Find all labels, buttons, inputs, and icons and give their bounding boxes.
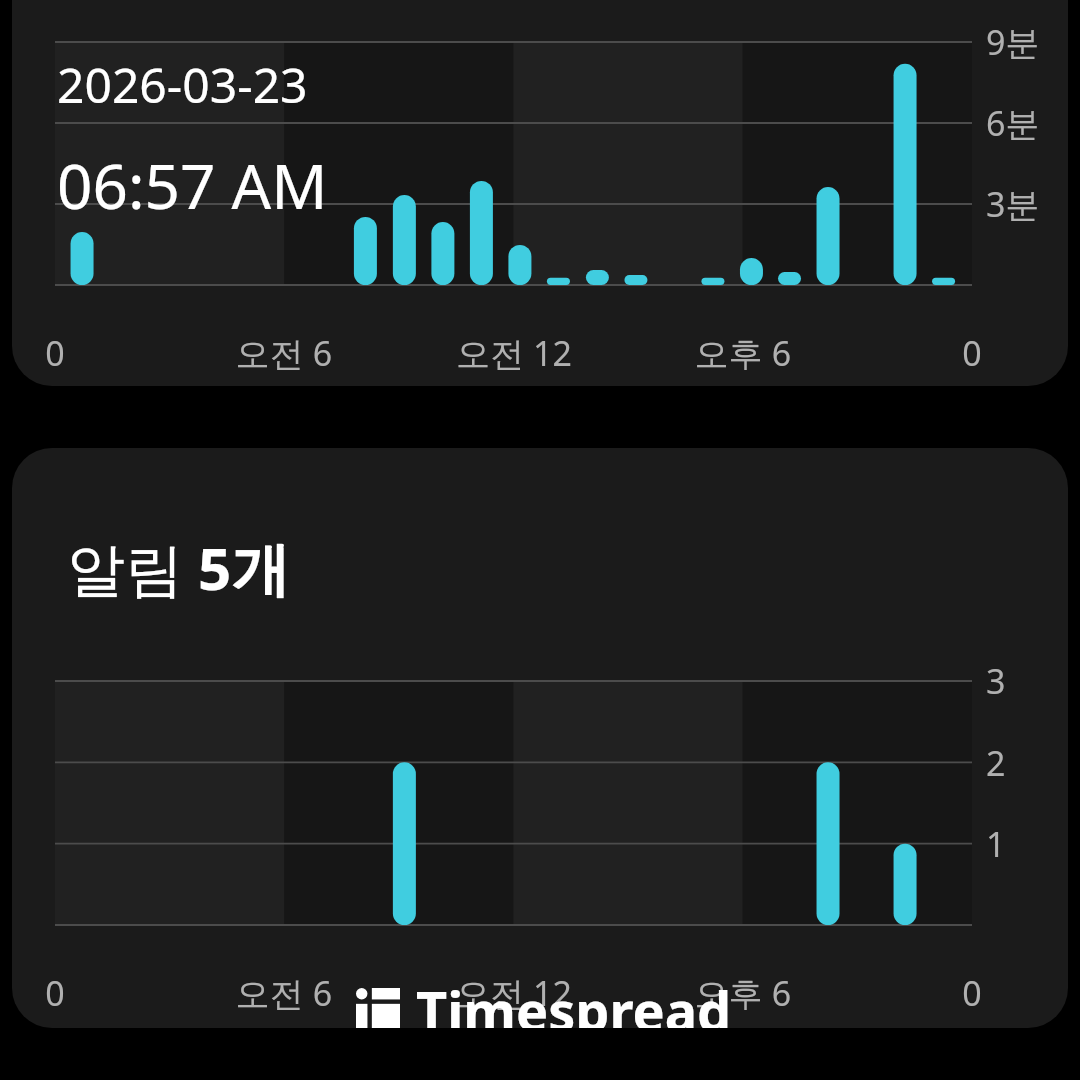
button[interactable]: Timespread [356,973,732,1028]
staticText: 2026-03-23 [57,52,308,117]
button[interactable]: 9분 [12,0,1068,386]
staticText: 0 [912,970,1032,1016]
staticText: 오후 6 [683,970,803,1016]
staticText: 알림 5개 [67,528,290,607]
staticText: 2 [986,740,1006,786]
staticText: 오전 6 [224,330,344,376]
button[interactable]: 3 [12,448,1068,1028]
staticText: 0 [12,330,115,376]
staticText: 오전 12 [454,970,574,1016]
staticText: 1 [986,821,1006,867]
staticText: 06:57 AM [57,143,328,227]
staticText: 오후 6 [683,330,803,376]
staticText: 0 [912,330,1032,376]
staticText: 9분 [986,19,1040,65]
staticText: 3분 [986,181,1040,227]
staticText: 오전 12 [454,330,574,376]
staticText: 0 [12,970,115,1016]
staticText: Timespread [416,973,732,1028]
staticText: 오전 6 [224,970,344,1016]
staticText: 6분 [986,100,1040,146]
staticText: 3 [986,658,1006,704]
